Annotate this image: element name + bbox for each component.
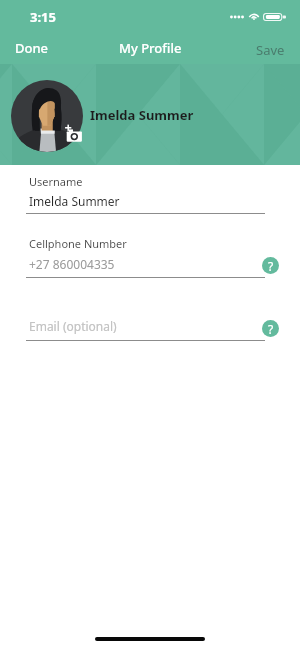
staticText: Email (optional)	[29, 318, 117, 334]
button[interactable]: Done	[0, 36, 64, 60]
button[interactable]: Help	[262, 320, 279, 337]
button[interactable]: Help	[262, 257, 279, 274]
button[interactable]: Change profile photo	[63, 124, 83, 142]
staticText: Done	[15, 39, 49, 57]
staticText: ?	[268, 321, 274, 337]
button[interactable]: Save	[239, 38, 300, 62]
staticText: Username	[29, 174, 83, 189]
staticText: Imelda Summer	[90, 106, 194, 124]
staticText: ?	[268, 258, 274, 274]
staticText: Imelda Summer	[29, 193, 120, 209]
staticText: My Profile	[119, 39, 182, 57]
staticText: +27 860004335	[29, 256, 115, 272]
staticText: Cellphone Number	[29, 236, 127, 251]
staticText: Save	[256, 41, 285, 59]
staticText: 3:15	[30, 8, 56, 26]
